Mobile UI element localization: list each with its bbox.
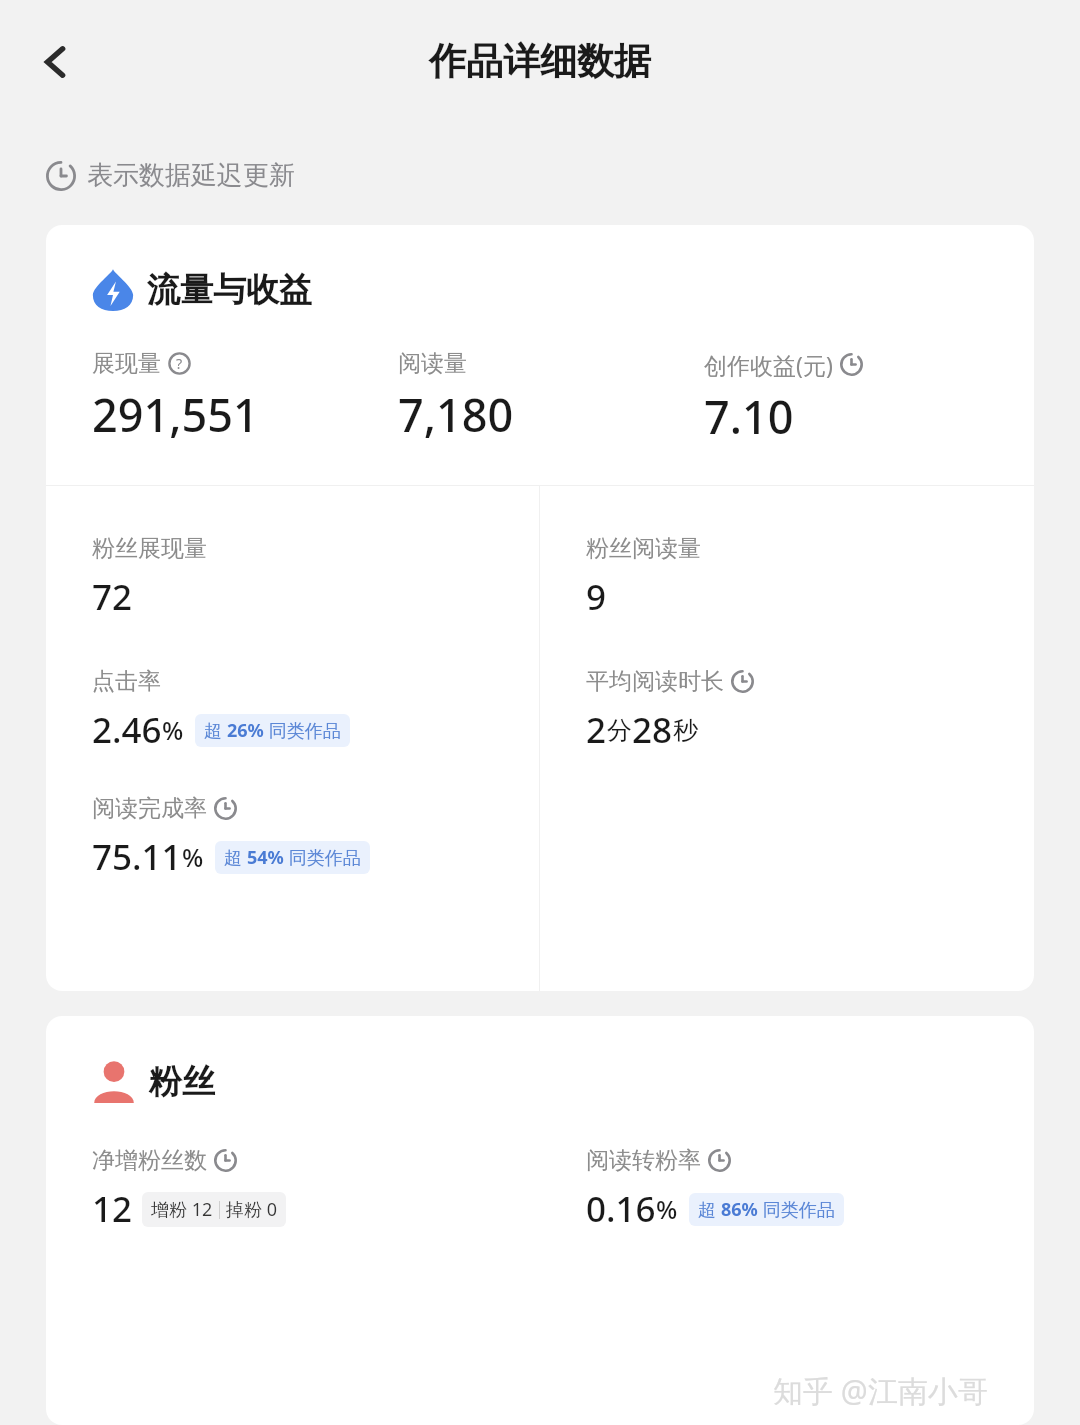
staticText: 同类作品: [758, 1197, 835, 1222]
button[interactable]: 流量与收益: [92, 269, 312, 311]
staticText: 291,551: [92, 384, 259, 445]
staticText: 粉丝阅读量: [586, 534, 701, 563]
staticText: 阅读转粉率: [586, 1146, 701, 1175]
button[interactable]: 返回: [22, 28, 90, 96]
staticText: %: [656, 1192, 678, 1226]
button[interactable]: 超: [698, 1197, 835, 1222]
staticText: 作品详细数据: [429, 38, 651, 85]
staticText: 同类作品: [284, 845, 361, 870]
staticText: 7.10: [704, 386, 794, 447]
other: 粉丝: [92, 1060, 136, 1104]
staticText: 净增粉丝数: [92, 1146, 207, 1175]
staticText: 超: [698, 1197, 721, 1222]
staticText: 7,180: [398, 384, 514, 445]
staticText: 秒: [673, 715, 698, 746]
staticText: 75.11: [92, 833, 182, 881]
staticText: 12: [92, 1185, 133, 1233]
staticText: 流量与收益: [147, 269, 312, 311]
button[interactable]: 增粉 12: [151, 1197, 277, 1222]
other: 流量与收益: [92, 269, 134, 311]
staticText: 创作收益(元): [704, 349, 833, 380]
staticText: 26%: [227, 718, 264, 743]
staticText: 粉丝: [149, 1061, 215, 1103]
staticText: 72: [92, 573, 133, 621]
staticText: 超: [224, 845, 247, 870]
staticText: 2.46: [92, 706, 162, 754]
button[interactable]: 超: [224, 845, 361, 870]
staticText: ?: [176, 354, 183, 373]
staticText: 同类作品: [264, 718, 341, 743]
staticText: 展现量: [92, 349, 161, 378]
staticText: 平均阅读时长: [586, 667, 724, 696]
staticText: 点击率: [92, 667, 161, 696]
staticText: 阅读完成率: [92, 794, 207, 823]
staticText: 9: [586, 573, 607, 621]
staticText: 知乎 @江南小哥: [773, 1370, 988, 1411]
staticText: 0.16: [586, 1185, 656, 1233]
staticText: 28: [632, 706, 673, 754]
staticText: %: [162, 713, 184, 747]
button[interactable]: 粉丝: [92, 1060, 215, 1104]
button[interactable]: 超: [204, 718, 341, 743]
staticText: 表示数据延迟更新: [87, 159, 295, 192]
staticText: 阅读量: [398, 349, 467, 378]
staticText: 粉丝展现量: [92, 534, 207, 563]
staticText: 超: [204, 718, 227, 743]
staticText: 54%: [247, 845, 284, 870]
staticText: 增粉 12: [151, 1197, 213, 1222]
staticText: 掉粉 0: [226, 1197, 277, 1222]
staticText: 分: [607, 715, 632, 746]
staticText: %: [182, 840, 204, 874]
staticText: 86%: [721, 1197, 758, 1222]
staticText: 2: [586, 706, 607, 754]
